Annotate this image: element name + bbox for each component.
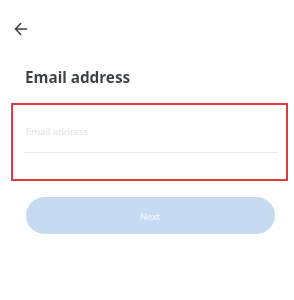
staticText: Email address bbox=[26, 125, 89, 138]
staticText: Next bbox=[140, 210, 161, 222]
staticText: Email address bbox=[25, 67, 131, 88]
button[interactable]: Back bbox=[11, 19, 31, 39]
button[interactable]: Next bbox=[26, 197, 275, 234]
button[interactable]: Email address bbox=[24, 121, 278, 153]
